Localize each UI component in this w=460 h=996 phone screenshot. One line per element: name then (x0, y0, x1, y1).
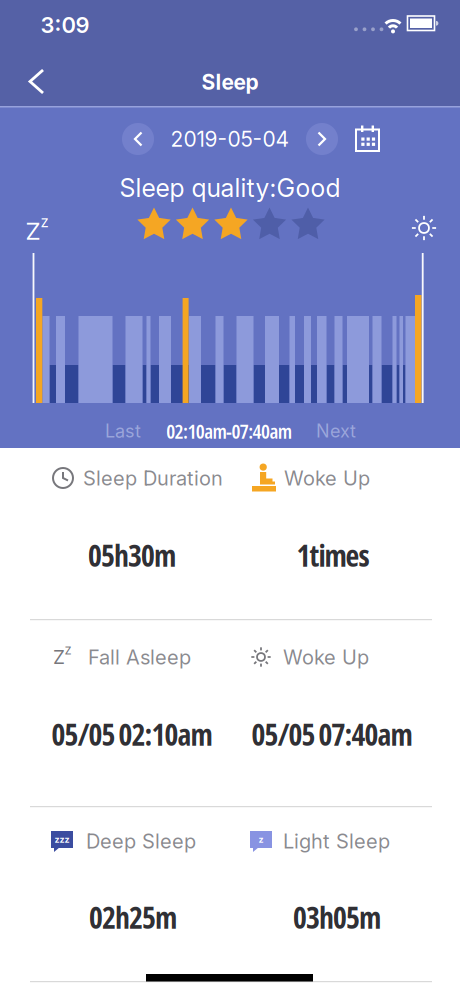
staticText: Light Sleep (283, 829, 390, 853)
staticText: 05h30m (88, 535, 176, 575)
staticText: z (258, 834, 263, 845)
staticText: 1times (296, 535, 369, 575)
staticText: Next (316, 420, 356, 442)
staticText: zzz (54, 834, 69, 845)
staticText: 02:10am-07:40am (166, 417, 292, 445)
staticText: 2019-05-04 (170, 126, 289, 152)
staticText: Z (53, 645, 65, 668)
staticText: Fall Asleep (88, 645, 191, 669)
staticText: Woke Up (284, 466, 370, 490)
staticText: Last (105, 420, 141, 442)
staticText: Deep Sleep (86, 829, 196, 853)
staticText: Sleep quality:Good (119, 173, 340, 203)
staticText: z (40, 213, 48, 231)
staticText: Woke Up (283, 645, 369, 669)
staticText: 05/05 02:10am (51, 714, 212, 754)
button[interactable]: Next (316, 420, 356, 442)
button[interactable] (122, 123, 154, 155)
button[interactable] (306, 123, 338, 155)
staticText: 03h05m (293, 897, 381, 937)
staticText: Sleep Duration (83, 466, 223, 490)
staticText: z (65, 642, 72, 658)
button[interactable] (28, 68, 45, 95)
button[interactable]: Last (105, 420, 141, 442)
button[interactable] (354, 124, 381, 152)
staticText: 05/05 07:40am (251, 714, 412, 754)
staticText: Sleep (201, 69, 258, 95)
staticText: 3:09 (40, 12, 89, 38)
staticText: 02h25m (89, 897, 177, 937)
staticText: Z (25, 216, 40, 245)
